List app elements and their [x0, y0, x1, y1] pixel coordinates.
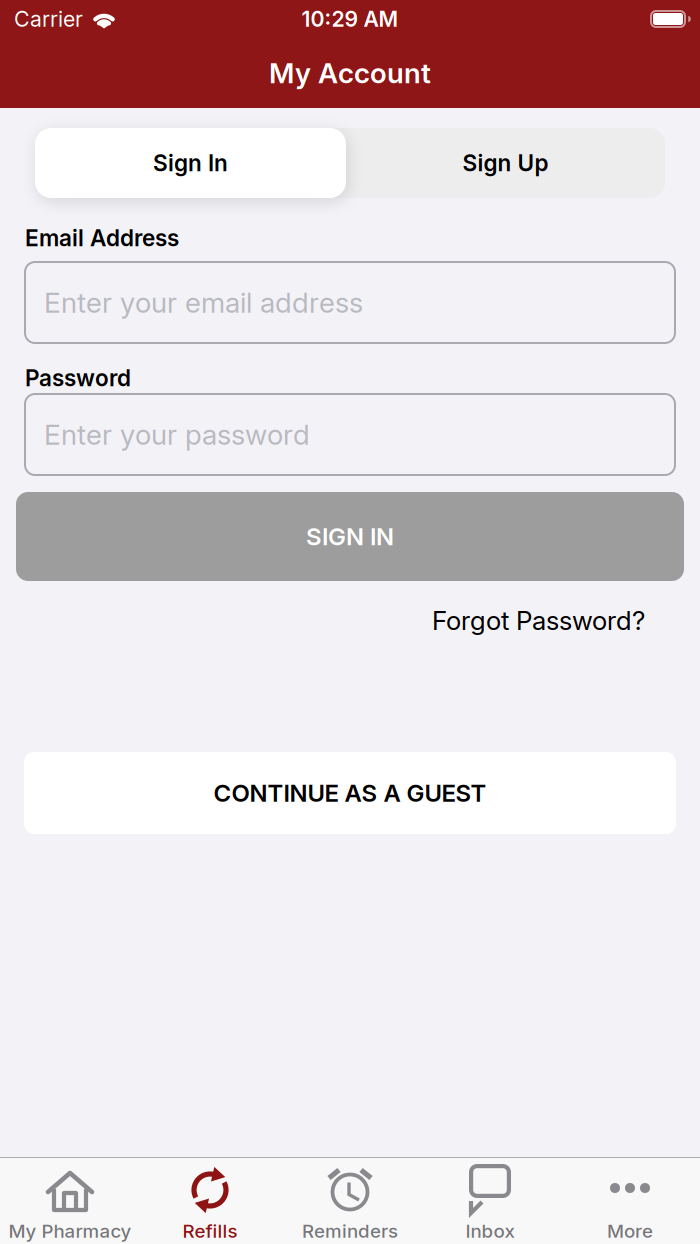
staticText: 10:29 AM: [301, 6, 398, 32]
button[interactable]: Enter your password: [24, 393, 676, 476]
staticText: Reminders: [302, 1220, 398, 1242]
staticText: SIGN IN: [306, 522, 394, 551]
staticText: Password: [25, 364, 131, 392]
button[interactable]: Inbox: [420, 1158, 560, 1244]
staticText: Email Address: [25, 224, 179, 252]
button[interactable]: Forgot Password?: [432, 605, 645, 636]
staticText: Forgot Password?: [432, 605, 645, 636]
button[interactable]: Sign Up: [346, 128, 665, 198]
button[interactable]: CONTINUE AS A GUEST: [0, 752, 700, 834]
staticText: Sign Up: [462, 149, 548, 177]
staticText: Sign In: [153, 149, 228, 177]
button[interactable]: Refills: [140, 1158, 280, 1244]
staticText: More: [607, 1220, 653, 1242]
staticText: Enter your email address: [44, 286, 363, 319]
staticText: Refills: [182, 1220, 237, 1242]
staticText: Carrier: [14, 6, 83, 32]
staticText: Inbox: [465, 1220, 514, 1242]
staticText: Enter your password: [44, 418, 310, 451]
staticText: My Account: [269, 56, 431, 90]
button[interactable]: Enter your email address: [24, 261, 676, 344]
button[interactable]: SIGN IN: [0, 492, 700, 581]
button[interactable]: More: [560, 1158, 700, 1244]
staticText: My Pharmacy: [8, 1220, 131, 1242]
button[interactable]: My Pharmacy: [0, 1158, 140, 1244]
button[interactable]: Reminders: [280, 1158, 420, 1244]
button[interactable]: Sign In: [35, 128, 346, 198]
staticText: CONTINUE AS A GUEST: [213, 778, 486, 807]
